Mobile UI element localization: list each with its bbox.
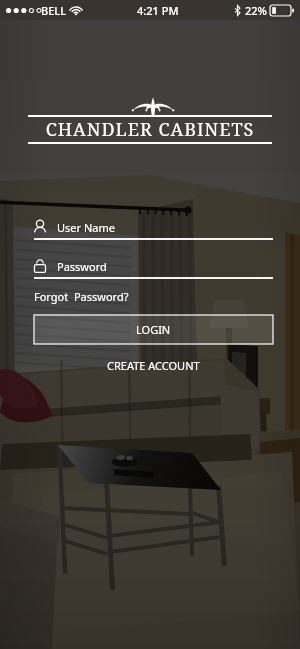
button[interactable]: CREATE ACCOUNT: [34, 358, 273, 373]
staticText: 4:21 PM: [137, 3, 179, 18]
button[interactable]: Forgot Password?: [34, 286, 129, 307]
staticText: CHANDLER CABINETS: [28, 117, 272, 142]
button[interactable]: Password: [34, 255, 273, 279]
staticText: CREATE ACCOUNT: [107, 358, 200, 373]
button[interactable]: LOGIN: [34, 315, 273, 344]
button[interactable]: User Name: [34, 216, 273, 240]
staticText: 22%: [245, 3, 267, 18]
staticText: Forgot Password?: [34, 289, 129, 304]
staticText: BELL: [41, 3, 67, 18]
staticText: User Name: [57, 220, 115, 235]
staticText: LOGIN: [136, 322, 171, 337]
staticText: Password: [57, 259, 107, 274]
